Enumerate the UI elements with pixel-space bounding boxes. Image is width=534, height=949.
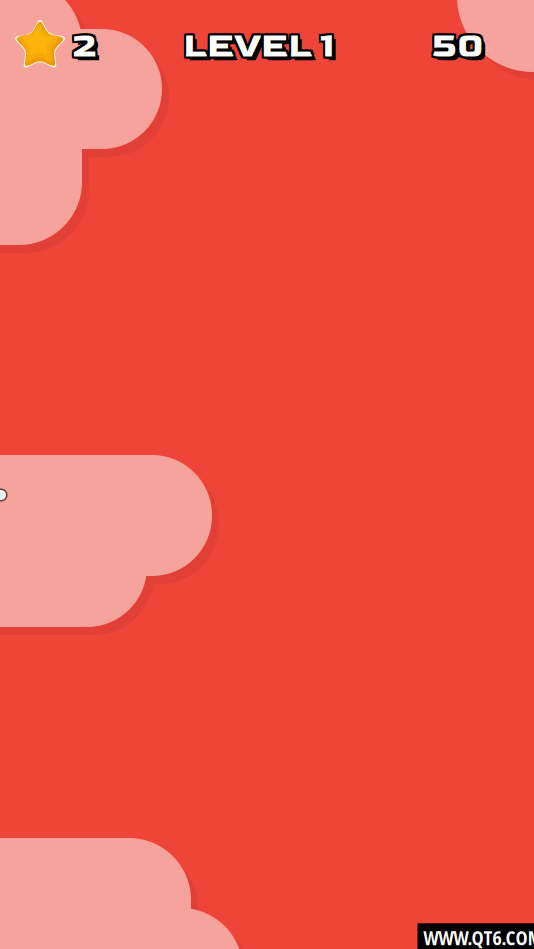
staticText: 50 [433, 25, 486, 67]
staticText: 50 [431, 23, 484, 65]
staticText: LEVEL 1 [181, 23, 333, 65]
staticText: 2 [72, 23, 95, 65]
staticText: 50 [429, 27, 482, 69]
staticText: 50 [429, 23, 482, 65]
staticText: 2 [70, 23, 93, 65]
staticText: LEVEL 1 [181, 27, 333, 69]
staticText: LEVEL 1 [181, 25, 333, 67]
staticText: LEVEL 1 [183, 27, 335, 69]
staticText: LEVEL 1 [183, 23, 335, 65]
staticText: 2 [74, 23, 97, 65]
staticText: 50 [431, 25, 484, 67]
staticText: 50 [431, 27, 484, 69]
staticText: 2 [76, 29, 99, 71]
staticText: LEVEL 1 [185, 23, 337, 65]
staticText: 2 [72, 27, 95, 69]
staticText: LEVEL 1 [187, 29, 339, 71]
button[interactable]: Stars collected: 2 [0, 0, 110, 80]
staticText: LEVEL 1 [183, 25, 335, 67]
staticText: 50 [433, 23, 486, 65]
staticText: 50 [429, 25, 482, 67]
staticText: 2 [72, 25, 95, 67]
staticText: 2 [70, 27, 93, 69]
staticText: 50 [433, 27, 486, 69]
staticText: WWW.QT6.COM [423, 925, 534, 949]
staticText: LEVEL 1 [185, 27, 337, 69]
staticText: 2 [74, 27, 97, 69]
staticText: 2 [74, 25, 97, 67]
staticText: 50 [435, 29, 488, 71]
staticText: LEVEL 1 [185, 25, 337, 67]
staticText: 2 [70, 25, 93, 67]
